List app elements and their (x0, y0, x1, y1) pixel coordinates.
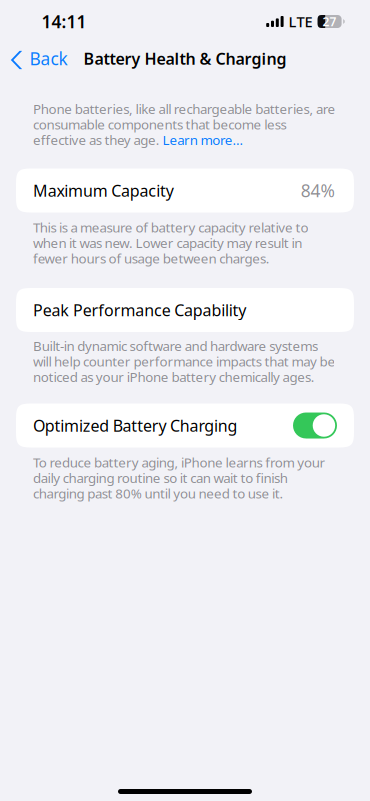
staticText: This is a measure of battery capacity re… (33, 218, 308, 236)
staticText: 84% (301, 179, 334, 202)
staticText: Battery Health & Charging (83, 48, 286, 69)
button[interactable]: Peak Performance Capability (0, 288, 370, 332)
staticText: when it was new. Lower capacity may resu… (33, 234, 302, 252)
staticText: Built-in dynamic software and hardware s… (33, 337, 318, 355)
staticText: charging past 80% until you need to use … (33, 484, 284, 502)
staticText: effective as they age. (33, 131, 163, 149)
staticText: To reduce battery aging, iPhone learns f… (33, 453, 326, 471)
staticText: 14:11 (41, 10, 86, 33)
button[interactable]: Optimized Battery Charging (0, 403, 370, 447)
staticText: 27 (323, 13, 337, 29)
staticText: Learn more… (163, 131, 244, 149)
staticText: Optimized Battery Charging (33, 415, 237, 436)
staticText: will help counter performance impacts th… (33, 352, 335, 370)
staticText: daily charging routine so it can wait to… (33, 469, 288, 487)
staticText: LTE (289, 12, 313, 31)
staticText: Back (30, 47, 68, 70)
staticText: Maximum Capacity (33, 180, 174, 201)
staticText: Peak Performance Capability (33, 299, 246, 321)
staticText: Phone batteries, like all rechargeable b… (33, 100, 336, 118)
button[interactable]: Learn more… (163, 132, 244, 147)
button[interactable]: Back (0, 38, 80, 75)
button[interactable]: Optimized Battery Charging, on (293, 412, 337, 438)
staticText: fewer hours of usage between charges. (33, 249, 270, 267)
button[interactable]: Maximum Capacity (0, 168, 370, 212)
staticText: consumable components that become less (33, 115, 287, 133)
staticText: noticed as your iPhone battery chemicall… (33, 368, 315, 386)
